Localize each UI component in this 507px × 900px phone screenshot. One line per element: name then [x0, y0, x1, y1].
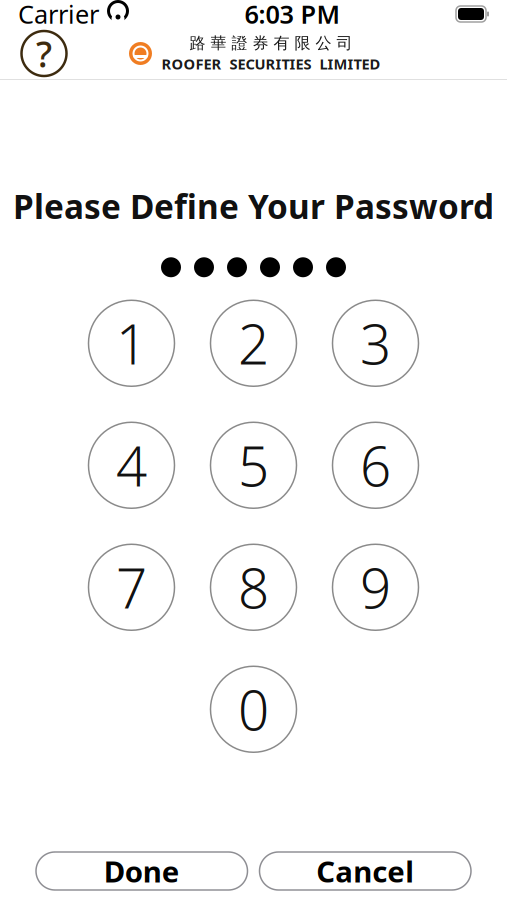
staticText: 0 [238, 673, 269, 746]
staticText: 9 [360, 551, 391, 624]
button[interactable]: 5 [210, 422, 296, 508]
staticText: Done [104, 851, 180, 890]
staticText: 8 [238, 551, 269, 624]
button[interactable]: Cancel [259, 852, 471, 890]
staticText: ROOFER SECURITIES LIMITED [161, 54, 380, 74]
staticText: Please Define Your Password [13, 184, 494, 228]
staticText: Carrier [18, 0, 99, 31]
staticText: Cancel [316, 851, 414, 890]
button[interactable]: 6 [332, 422, 418, 508]
staticText: 7 [116, 551, 147, 624]
button[interactable]: 8 [210, 544, 296, 630]
button[interactable]: 2 [210, 300, 296, 386]
staticText: 5 [238, 429, 269, 502]
button[interactable]: 7 [88, 544, 174, 630]
button[interactable]: 4 [88, 422, 174, 508]
staticText: ? [36, 30, 52, 77]
button[interactable]: Help [18, 27, 70, 79]
staticText: 4 [116, 429, 147, 502]
staticText: 2 [238, 307, 269, 380]
button[interactable]: 1 [88, 300, 174, 386]
button[interactable]: Done [36, 852, 247, 890]
button[interactable]: 3 [332, 300, 418, 386]
staticText: 1 [116, 307, 147, 380]
staticText: 6 [360, 429, 391, 502]
staticText: 6:03 PM [244, 0, 340, 31]
button[interactable]: 0 [210, 666, 296, 752]
staticText: 3 [360, 307, 391, 380]
staticText: 路 華 證 券 有 限 公 司 [189, 33, 352, 53]
button[interactable]: 9 [332, 544, 418, 630]
